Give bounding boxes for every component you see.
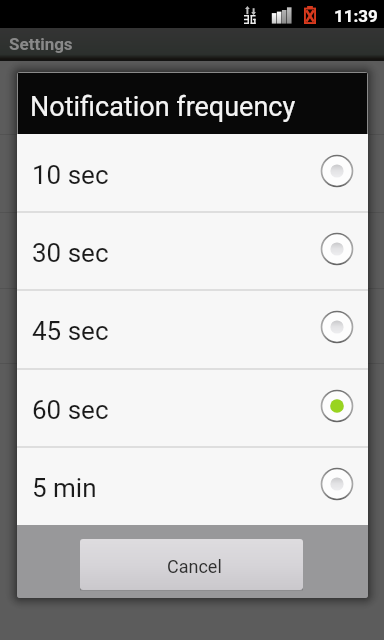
other: 3G data	[244, 5, 257, 16]
button[interactable]: 10 sec	[17, 134, 368, 212]
button[interactable]: 30 sec	[17, 212, 368, 290]
button[interactable]: 45 sec	[17, 290, 368, 368]
staticText: 10 sec	[32, 160, 319, 190]
button[interactable]: 60 sec	[17, 369, 368, 447]
staticText: 60 sec	[32, 395, 319, 425]
staticText: 5 min	[32, 473, 319, 503]
staticText: Cancel	[167, 556, 222, 577]
other: 3G	[244, 15, 256, 24]
staticText: 45 sec	[32, 316, 319, 346]
button[interactable]: Cancel	[80, 539, 303, 590]
other: Battery	[304, 6, 316, 24]
staticText: 30 sec	[32, 238, 319, 268]
staticText: Settings	[9, 34, 73, 54]
button[interactable]: 5 min	[17, 447, 368, 525]
staticText: Notification frequency	[30, 91, 296, 123]
staticText: 11:39	[334, 6, 378, 26]
other: Signal strength	[271, 6, 292, 24]
